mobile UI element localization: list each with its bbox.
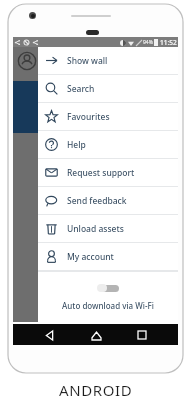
- staticText: My account: [67, 251, 114, 263]
- staticText: Request support: [67, 167, 135, 179]
- button[interactable]: Show wall: [38, 47, 178, 74]
- staticText: Help: [67, 139, 86, 151]
- button[interactable]: Back: [39, 325, 59, 345]
- staticText: Auto download via Wi-Fi: [62, 300, 154, 311]
- button[interactable]: Request support: [38, 159, 178, 186]
- staticText: Favourites: [67, 111, 110, 123]
- button[interactable]: Recent apps: [132, 325, 152, 345]
- button[interactable]: Search: [38, 75, 178, 102]
- staticText: Unload assets: [67, 223, 124, 235]
- button[interactable]: Help: [38, 131, 178, 158]
- staticText: Search: [67, 83, 95, 95]
- button[interactable]: Favourites: [38, 103, 178, 130]
- staticText: Send feedback: [67, 195, 127, 207]
- staticText: 94%: [143, 39, 153, 46]
- button[interactable]: Auto download via Wi-Fi: [38, 272, 178, 322]
- staticText: Show wall: [67, 55, 108, 67]
- button[interactable]: Send feedback: [38, 187, 178, 214]
- staticText: ANDROID: [59, 380, 133, 400]
- button[interactable]: Unload assets: [38, 215, 178, 242]
- button[interactable]: My account: [38, 243, 178, 270]
- staticText: 11:52: [160, 38, 177, 47]
- button[interactable]: Home: [86, 325, 106, 345]
